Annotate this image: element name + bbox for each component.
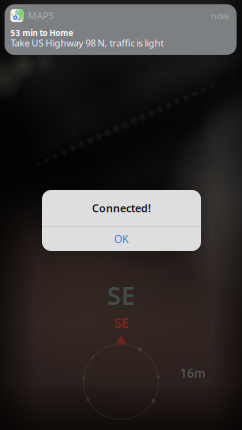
staticText: 53 min to Home [10,27,73,38]
button[interactable]: OK [42,227,201,251]
staticText: 16m [180,365,206,381]
button[interactable]: MAPS [5,4,237,55]
staticText: OK [114,232,129,246]
staticText: Connected! [92,201,151,215]
staticText: SE [107,278,135,312]
staticText: Take US Highway 98 N, traffic is light [10,37,163,49]
staticText: MAPS [28,9,54,22]
staticText: now [211,9,229,22]
staticText: SE [114,314,128,332]
